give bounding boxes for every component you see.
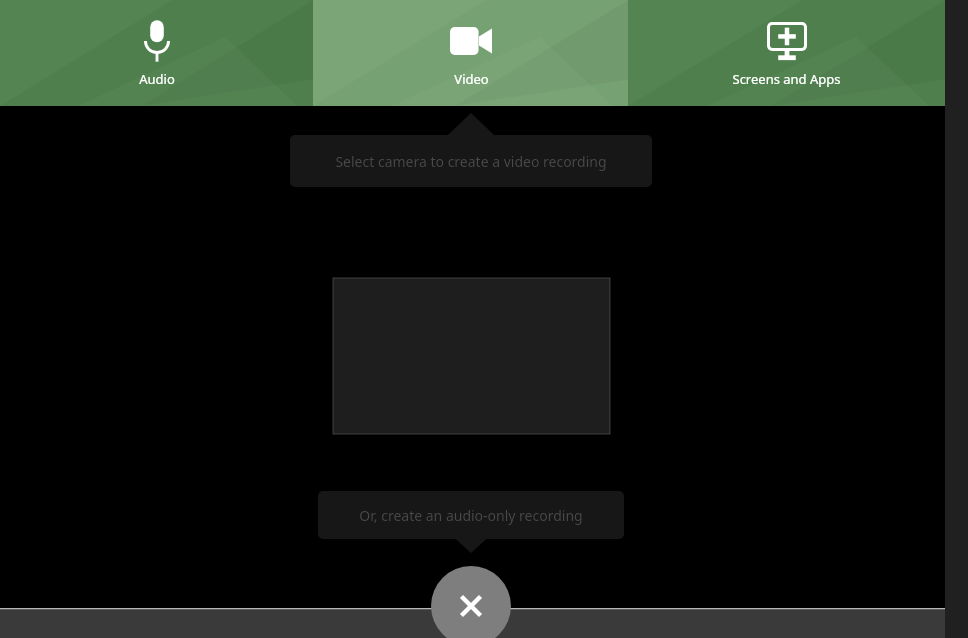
staticText: Audio xyxy=(139,70,175,88)
button[interactable]: Audio xyxy=(0,0,313,106)
staticText: Select camera to create a video recordin… xyxy=(335,152,607,171)
staticText: Video xyxy=(454,70,489,88)
staticText: Or, create an audio-only recording xyxy=(359,506,583,525)
button[interactable]: Screens and Apps xyxy=(628,0,945,106)
button[interactable]: Close xyxy=(431,566,511,638)
button[interactable]: Video xyxy=(313,0,628,106)
staticText: Screens and Apps xyxy=(732,70,841,88)
